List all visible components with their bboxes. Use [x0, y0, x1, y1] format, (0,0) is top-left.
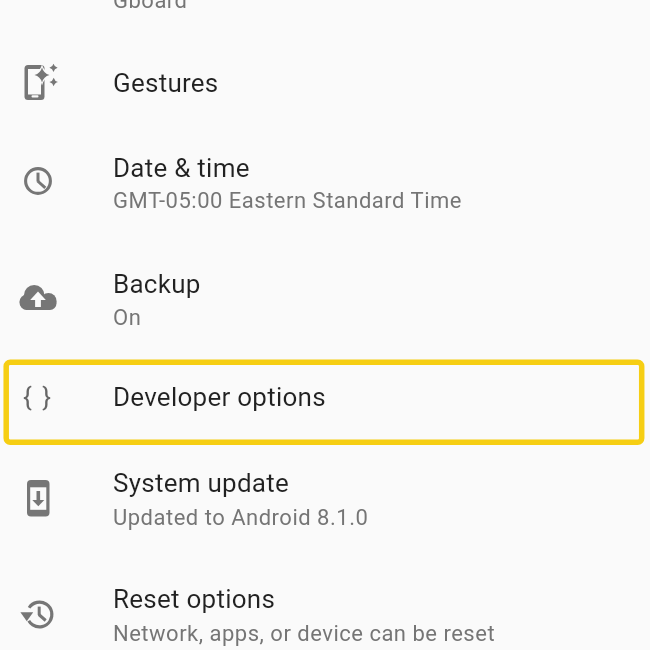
button[interactable]: System update — [0, 448, 650, 560]
button[interactable]: Gestures — [0, 32, 650, 132]
staticText: GMT-05:00 Eastern Standard Time — [113, 188, 462, 214]
staticText: Gestures — [113, 68, 219, 98]
button[interactable]: { } — [0, 357, 650, 448]
staticText: Gboard — [113, 0, 188, 14]
button[interactable]: Reset options — [0, 560, 650, 650]
button[interactable]: Gboard — [0, 0, 650, 32]
button[interactable]: Date & time — [0, 132, 650, 248]
staticText: Network, apps, or device can be reset — [113, 621, 496, 647]
staticText: Date & time — [113, 153, 250, 183]
staticText: Reset options — [113, 584, 276, 614]
staticText: { } — [23, 382, 54, 412]
staticText: System update — [113, 468, 289, 498]
staticText: Developer options — [113, 382, 326, 412]
button[interactable]: Backup — [0, 248, 650, 360]
staticText: On — [113, 305, 142, 331]
staticText: Backup — [113, 269, 201, 299]
staticText: Updated to Android 8.1.0 — [113, 505, 369, 531]
